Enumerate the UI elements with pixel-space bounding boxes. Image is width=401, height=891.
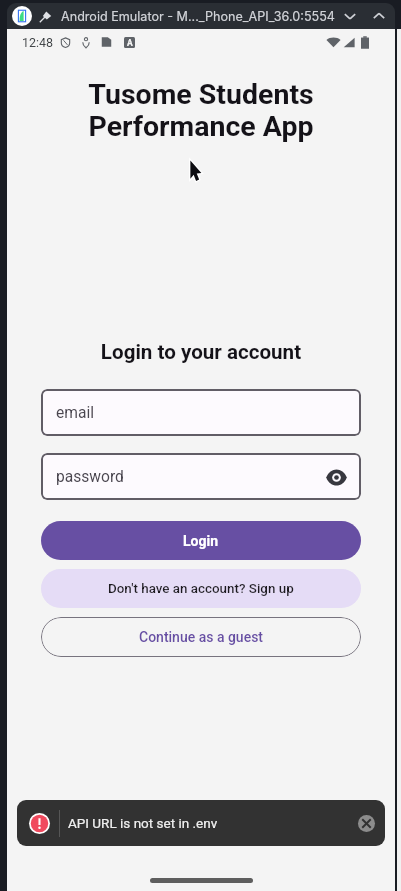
button[interactable]: email: [41, 389, 361, 436]
button[interactable]: Show options: [339, 5, 361, 27]
button[interactable]: Continue as a guest: [41, 617, 361, 657]
button[interactable]: Don't have an account? Sign up: [41, 569, 361, 608]
staticText: 12:48: [22, 35, 54, 50]
staticText: password: [56, 468, 124, 486]
staticText: Continue as a guest: [139, 629, 264, 645]
staticText: Tusome Students Performance App: [7, 78, 395, 143]
staticText: A: [127, 38, 133, 48]
other: Pin window: [39, 10, 52, 23]
button[interactable]: Collapse panel: [368, 5, 390, 27]
staticText: API URL is not set in .env: [68, 815, 218, 831]
staticText: Login to your account: [41, 340, 361, 364]
staticText: Login: [183, 533, 219, 549]
staticText: Don't have an account? Sign up: [108, 581, 294, 597]
staticText: email: [56, 404, 95, 422]
staticText: Android Emulator - M..._Phone_API_36.0:5…: [61, 9, 335, 24]
button[interactable]: password: [41, 453, 361, 500]
button[interactable]: Show password: [324, 463, 349, 491]
button[interactable]: Dismiss: [351, 808, 381, 838]
button[interactable]: Login: [41, 521, 361, 560]
